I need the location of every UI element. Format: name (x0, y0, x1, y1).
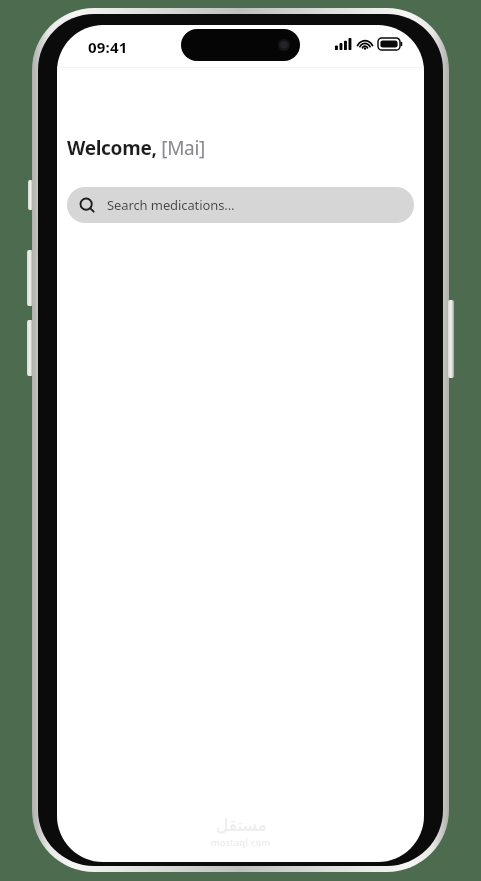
staticText: 09:41 (88, 37, 128, 57)
staticText: mostaql.com (211, 836, 271, 848)
staticText: مستقل (216, 815, 267, 835)
staticText: Search medications... (107, 196, 235, 214)
button[interactable]: Search medications... (67, 187, 414, 223)
staticText: Welcome, [Mai] (67, 135, 205, 161)
